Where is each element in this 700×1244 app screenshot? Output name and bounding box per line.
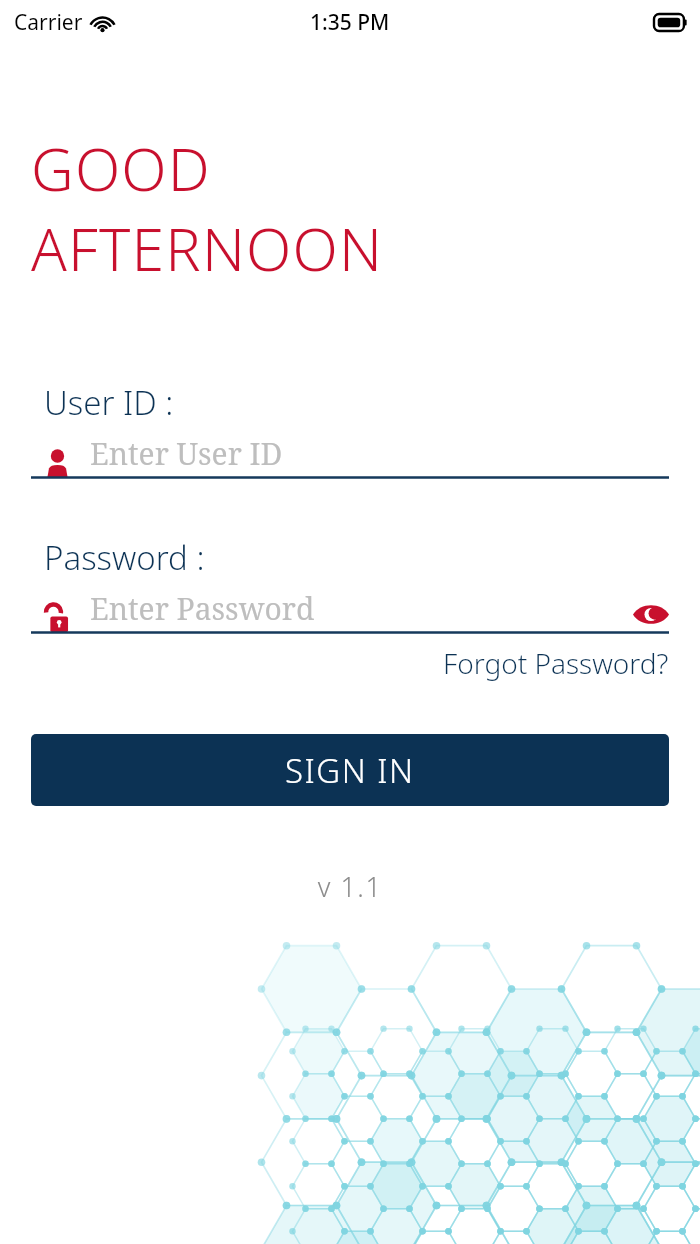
staticText: Carrier (14, 8, 83, 37)
staticText: v 1.1 (0, 868, 700, 905)
button[interactable]: Forgot Password? (443, 644, 669, 682)
staticText: 1:35 PM (310, 8, 390, 37)
button[interactable]: Enter User ID (31, 435, 669, 479)
staticText: Enter User ID (90, 433, 283, 474)
staticText: Forgot Password? (443, 644, 669, 682)
staticText: AFTERNOON (31, 208, 384, 288)
other: Password (42, 602, 73, 633)
staticText: Enter Password (90, 588, 315, 629)
staticText: User ID : (44, 380, 174, 425)
other: User ID (42, 447, 73, 478)
button[interactable]: Show password (633, 603, 669, 626)
staticText: GOOD (31, 128, 211, 208)
button[interactable]: Enter Password (31, 590, 669, 634)
staticText: Password : (44, 535, 205, 580)
staticText: SIGN IN (285, 748, 415, 793)
button[interactable]: SIGN IN (31, 734, 669, 806)
